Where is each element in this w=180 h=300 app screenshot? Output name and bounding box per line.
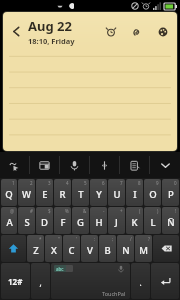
staticText: 6 — [102, 180, 105, 186]
staticText: ! — [175, 208, 177, 214]
staticText: ? — [148, 236, 150, 242]
staticText: # — [30, 208, 33, 214]
button[interactable]: Space — [51, 263, 130, 299]
button[interactable]: / — [117, 235, 134, 262]
button[interactable]: Shift — [1, 235, 26, 262]
button[interactable]: Collapse — [150, 152, 180, 178]
button[interactable]: 3 — [36, 179, 53, 206]
staticText: 9 — [156, 180, 159, 186]
staticText: T — [78, 188, 84, 201]
staticText: N — [122, 244, 130, 257]
button[interactable]: 0 — [162, 179, 179, 206]
button[interactable]: ! — [162, 207, 179, 234]
staticText: K — [131, 216, 138, 229]
staticText: $ — [48, 208, 51, 214]
staticText: ' — [76, 236, 78, 242]
button[interactable]: 12# — [1, 263, 30, 299]
button[interactable]: % — [54, 207, 71, 234]
staticText: B — [104, 244, 111, 257]
staticText: + — [120, 208, 123, 214]
staticText: . — [139, 277, 142, 288]
button[interactable]: 6 — [90, 179, 107, 206]
button[interactable]: 8 — [126, 179, 143, 206]
button[interactable]: Handwriting — [0, 152, 29, 178]
staticText: I — [133, 188, 137, 201]
staticText: Y — [96, 188, 102, 201]
button[interactable]: Voice input — [60, 152, 89, 178]
staticText: 8 — [138, 180, 141, 186]
button[interactable]: Clipboard — [120, 152, 149, 178]
button[interactable]: 5 — [72, 179, 89, 206]
staticText: ) — [157, 208, 159, 214]
staticText: L — [150, 216, 156, 229]
button[interactable]: , — [31, 263, 50, 299]
button[interactable]: ? — [135, 235, 152, 262]
button[interactable]: Reminder — [102, 23, 119, 40]
staticText: C — [68, 244, 75, 257]
staticText: F — [60, 216, 66, 229]
button[interactable]: 2 — [18, 179, 35, 206]
staticText: V — [87, 244, 93, 257]
staticText: S — [24, 216, 30, 229]
staticText: - — [103, 208, 105, 214]
staticText: 4 — [66, 180, 69, 186]
staticText: & — [83, 208, 87, 214]
button[interactable]: $ — [36, 207, 53, 234]
button[interactable]: - — [90, 207, 107, 234]
staticText: 2 — [30, 180, 33, 186]
staticText: Aug 22 — [28, 17, 72, 35]
staticText: ; — [112, 236, 114, 242]
staticText: " — [58, 236, 60, 242]
button[interactable]: ) — [144, 207, 161, 234]
button[interactable]: 7 — [108, 179, 125, 206]
staticText: J — [115, 216, 118, 229]
button[interactable]: 4 — [54, 179, 71, 206]
staticText: O — [149, 188, 157, 201]
staticText: G — [77, 216, 84, 229]
staticText: 1 — [12, 180, 15, 186]
staticText: M — [139, 244, 148, 257]
button[interactable]: * — [27, 235, 44, 262]
button[interactable]: : — [81, 235, 98, 262]
staticText: Z — [33, 244, 39, 257]
staticText: 7 — [120, 180, 123, 186]
button[interactable]: ' — [63, 235, 80, 262]
button[interactable]: 9 — [144, 179, 161, 206]
staticText: 12# — [8, 276, 23, 287]
button[interactable]: ( — [126, 207, 143, 234]
staticText: D — [41, 216, 48, 229]
staticText: 3 — [48, 180, 51, 186]
staticText: P — [168, 188, 174, 201]
staticText: A — [6, 216, 13, 229]
button[interactable]: Translate — [30, 152, 59, 178]
staticText: W — [22, 188, 31, 201]
staticText: ( — [139, 208, 141, 214]
staticText: : — [94, 236, 96, 242]
button[interactable]: 1 — [1, 179, 17, 206]
staticText: / — [130, 236, 132, 242]
button[interactable]: Cursor — [90, 152, 119, 178]
button[interactable]: & — [72, 207, 89, 234]
staticText: X — [51, 244, 57, 257]
staticText: Q — [5, 188, 13, 201]
button[interactable]: ; — [99, 235, 116, 262]
staticText: U — [113, 188, 121, 201]
button[interactable]: Colour — [154, 23, 171, 40]
staticText: 5 — [84, 180, 87, 186]
staticText: * — [39, 236, 42, 242]
staticText: H — [95, 216, 103, 229]
staticText: 0 — [174, 180, 177, 186]
button[interactable]: . — [131, 263, 150, 299]
button[interactable]: Attach — [128, 23, 145, 40]
staticText: , — [39, 277, 42, 288]
button[interactable]: # — [18, 207, 35, 234]
button[interactable]: Back — [6, 21, 26, 41]
staticText: R — [59, 188, 66, 201]
button[interactable]: @ — [1, 207, 17, 234]
staticText: @ — [10, 208, 15, 214]
button[interactable]: Backspace — [153, 235, 179, 262]
button[interactable]: Enter — [151, 263, 179, 299]
staticText: abc — [56, 266, 64, 272]
button[interactable]: " — [45, 235, 62, 262]
button[interactable]: + — [108, 207, 125, 234]
